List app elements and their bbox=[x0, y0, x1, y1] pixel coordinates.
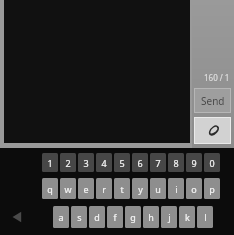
staticText: 4 bbox=[101, 157, 107, 169]
button[interactable]: 5 bbox=[114, 153, 130, 172]
button[interactable]: s bbox=[71, 206, 87, 228]
staticText: 8 bbox=[173, 157, 179, 169]
button[interactable]: Back bbox=[0, 204, 34, 230]
staticText: y bbox=[138, 183, 143, 195]
staticText: f bbox=[113, 211, 117, 223]
button[interactable]: p bbox=[204, 178, 220, 199]
button[interactable]: 0 bbox=[204, 153, 220, 172]
button[interactable]: 8 bbox=[168, 153, 184, 172]
button[interactable]: o bbox=[186, 178, 202, 199]
staticText: s bbox=[77, 211, 82, 223]
button[interactable]: u bbox=[150, 178, 166, 199]
staticText: 6 bbox=[137, 157, 143, 169]
staticText: 2 bbox=[65, 157, 71, 169]
staticText: i bbox=[175, 183, 178, 195]
button[interactable]: t bbox=[114, 178, 130, 199]
button[interactable]: d bbox=[89, 206, 105, 228]
button[interactable]: w bbox=[60, 178, 76, 199]
button[interactable]: 4 bbox=[96, 153, 112, 172]
button[interactable]: 3 bbox=[78, 153, 94, 172]
button[interactable]: Send bbox=[194, 88, 231, 113]
staticText: r bbox=[102, 183, 106, 195]
staticText: 3 bbox=[83, 157, 89, 169]
staticText: g bbox=[130, 211, 136, 223]
button[interactable]: a bbox=[53, 206, 69, 228]
staticText: 7 bbox=[155, 157, 161, 169]
staticText: h bbox=[148, 211, 154, 223]
staticText: t bbox=[120, 183, 124, 195]
button[interactable]: y bbox=[132, 178, 148, 199]
staticText: k bbox=[185, 211, 190, 223]
button[interactable]: e bbox=[78, 178, 94, 199]
button[interactable]: f bbox=[107, 206, 123, 228]
button[interactable]: q bbox=[42, 178, 58, 199]
button[interactable]: 1 bbox=[42, 153, 58, 172]
staticText: e bbox=[83, 183, 89, 195]
staticText: a bbox=[58, 211, 64, 223]
button[interactable]: 9 bbox=[186, 153, 202, 172]
staticText: w bbox=[64, 183, 72, 195]
button[interactable]: j bbox=[161, 206, 177, 228]
button[interactable]: l bbox=[197, 206, 213, 228]
staticText: d bbox=[94, 211, 100, 223]
staticText: 5 bbox=[119, 157, 125, 169]
button[interactable]: Attach file bbox=[194, 117, 231, 144]
button[interactable]: h bbox=[143, 206, 159, 228]
staticText: p bbox=[209, 183, 215, 195]
staticText: Send bbox=[201, 94, 225, 108]
button[interactable]: g bbox=[125, 206, 141, 228]
staticText: u bbox=[155, 183, 161, 195]
staticText: 1 bbox=[47, 157, 53, 169]
staticText: 0 bbox=[209, 157, 215, 169]
button[interactable]: 7 bbox=[150, 153, 166, 172]
staticText: q bbox=[47, 183, 53, 195]
button[interactable]: r bbox=[96, 178, 112, 199]
button[interactable]: k bbox=[179, 206, 195, 228]
staticText: l bbox=[204, 211, 207, 223]
staticText: 9 bbox=[191, 157, 197, 169]
button[interactable]: 2 bbox=[60, 153, 76, 172]
staticText: j bbox=[168, 211, 171, 223]
staticText: o bbox=[191, 183, 197, 195]
button[interactable]: 6 bbox=[132, 153, 148, 172]
button[interactable]: i bbox=[168, 178, 184, 199]
staticText: 160 / 1 bbox=[204, 72, 230, 83]
